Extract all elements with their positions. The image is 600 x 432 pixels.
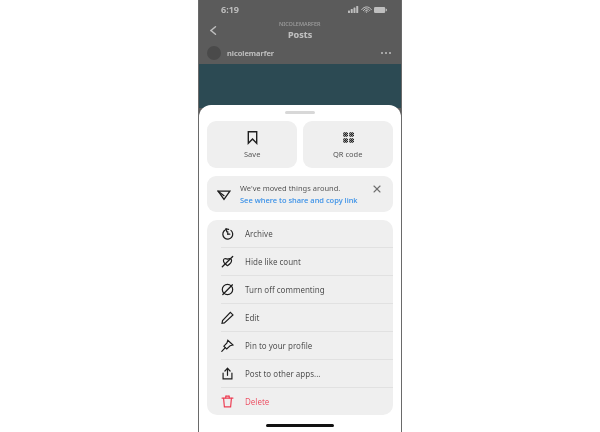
button[interactable]: Archive [207, 220, 393, 247]
button[interactable]: Edit [207, 304, 393, 331]
staticText: Posts [288, 28, 313, 40]
staticText: nicolemarfer [227, 48, 275, 58]
staticText: Hide like count [245, 256, 301, 267]
staticText: See where to share and copy link [240, 195, 358, 205]
button[interactable]: More options [381, 52, 391, 54]
button[interactable]: Post to other apps... [207, 360, 393, 387]
button[interactable]: Dismiss [371, 183, 383, 195]
staticText: Post to other apps... [245, 368, 321, 379]
staticText: NICOLEMARFER [279, 20, 321, 27]
button[interactable]: Save [207, 121, 297, 168]
staticText: Pin to your profile [245, 340, 313, 351]
button[interactable]: Back [204, 21, 222, 39]
button[interactable]: Hide like count [207, 248, 393, 275]
staticText: QR code [333, 149, 363, 159]
button[interactable]: Pin to your profile [207, 332, 393, 359]
staticText: Turn off commenting [245, 284, 325, 295]
staticText: Archive [245, 228, 273, 239]
staticText: 6:19 [221, 3, 239, 15]
button[interactable]: Delete [207, 388, 393, 415]
staticText: Save [244, 149, 261, 159]
staticText: We've moved things around. [240, 183, 341, 193]
button[interactable]: Turn off commenting [207, 276, 393, 303]
button[interactable]: QR code [303, 121, 393, 168]
button[interactable]: We've moved things around. [207, 176, 393, 212]
staticText: Delete [245, 396, 270, 407]
staticText: Edit [245, 312, 260, 323]
